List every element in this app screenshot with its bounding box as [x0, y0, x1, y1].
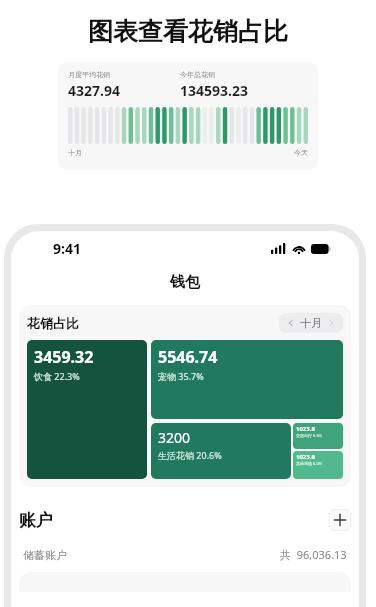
- staticText: 宠物 35.7%: [158, 370, 204, 382]
- button[interactable]: 月度平均花销: [58, 62, 318, 170]
- button[interactable]: Add account: [329, 509, 351, 531]
- staticText: 花销占比: [27, 315, 79, 331]
- other: Previous month: [287, 319, 295, 327]
- staticText: 饮食 22.3%: [34, 370, 80, 382]
- button[interactable]: 5546.74: [151, 340, 343, 419]
- staticText: 5546.74: [158, 346, 218, 368]
- button[interactable]: 1023.8: [293, 423, 343, 449]
- staticText: 4327.94: [68, 81, 120, 100]
- button[interactable]: 1023.8: [293, 451, 343, 479]
- staticText: 今年总花销: [180, 70, 215, 79]
- staticText: 账户: [19, 510, 53, 531]
- staticText: 9:41: [53, 239, 81, 258]
- staticText: 今天: [294, 148, 308, 157]
- staticText: 储蓄账户: [23, 548, 67, 562]
- staticText: 共 96,036.13: [280, 547, 347, 562]
- staticText: 交通出行 6.5%: [296, 433, 323, 438]
- staticText: 图表查看花销占比: [88, 16, 288, 47]
- staticText: 3200: [158, 428, 191, 447]
- staticText: 十月: [300, 316, 322, 330]
- staticText: 1023.8: [296, 453, 315, 461]
- staticText: 1023.8: [296, 425, 315, 433]
- staticText: 十月: [68, 148, 82, 157]
- staticText: 月度平均花销: [68, 70, 110, 79]
- button[interactable]: 3200: [151, 423, 291, 479]
- staticText: 钱包: [170, 273, 200, 292]
- other: Next month: [327, 319, 335, 327]
- staticText: 生活花销 20.6%: [158, 449, 222, 461]
- staticText: 3459.32: [34, 346, 94, 368]
- staticText: 其他花销 6.0%: [296, 461, 323, 466]
- button[interactable]: 储蓄账户: [23, 547, 347, 562]
- staticText: 134593.23: [180, 81, 248, 100]
- button[interactable]: 3459.32: [27, 340, 147, 479]
- button[interactable]: Previous month: [279, 313, 343, 333]
